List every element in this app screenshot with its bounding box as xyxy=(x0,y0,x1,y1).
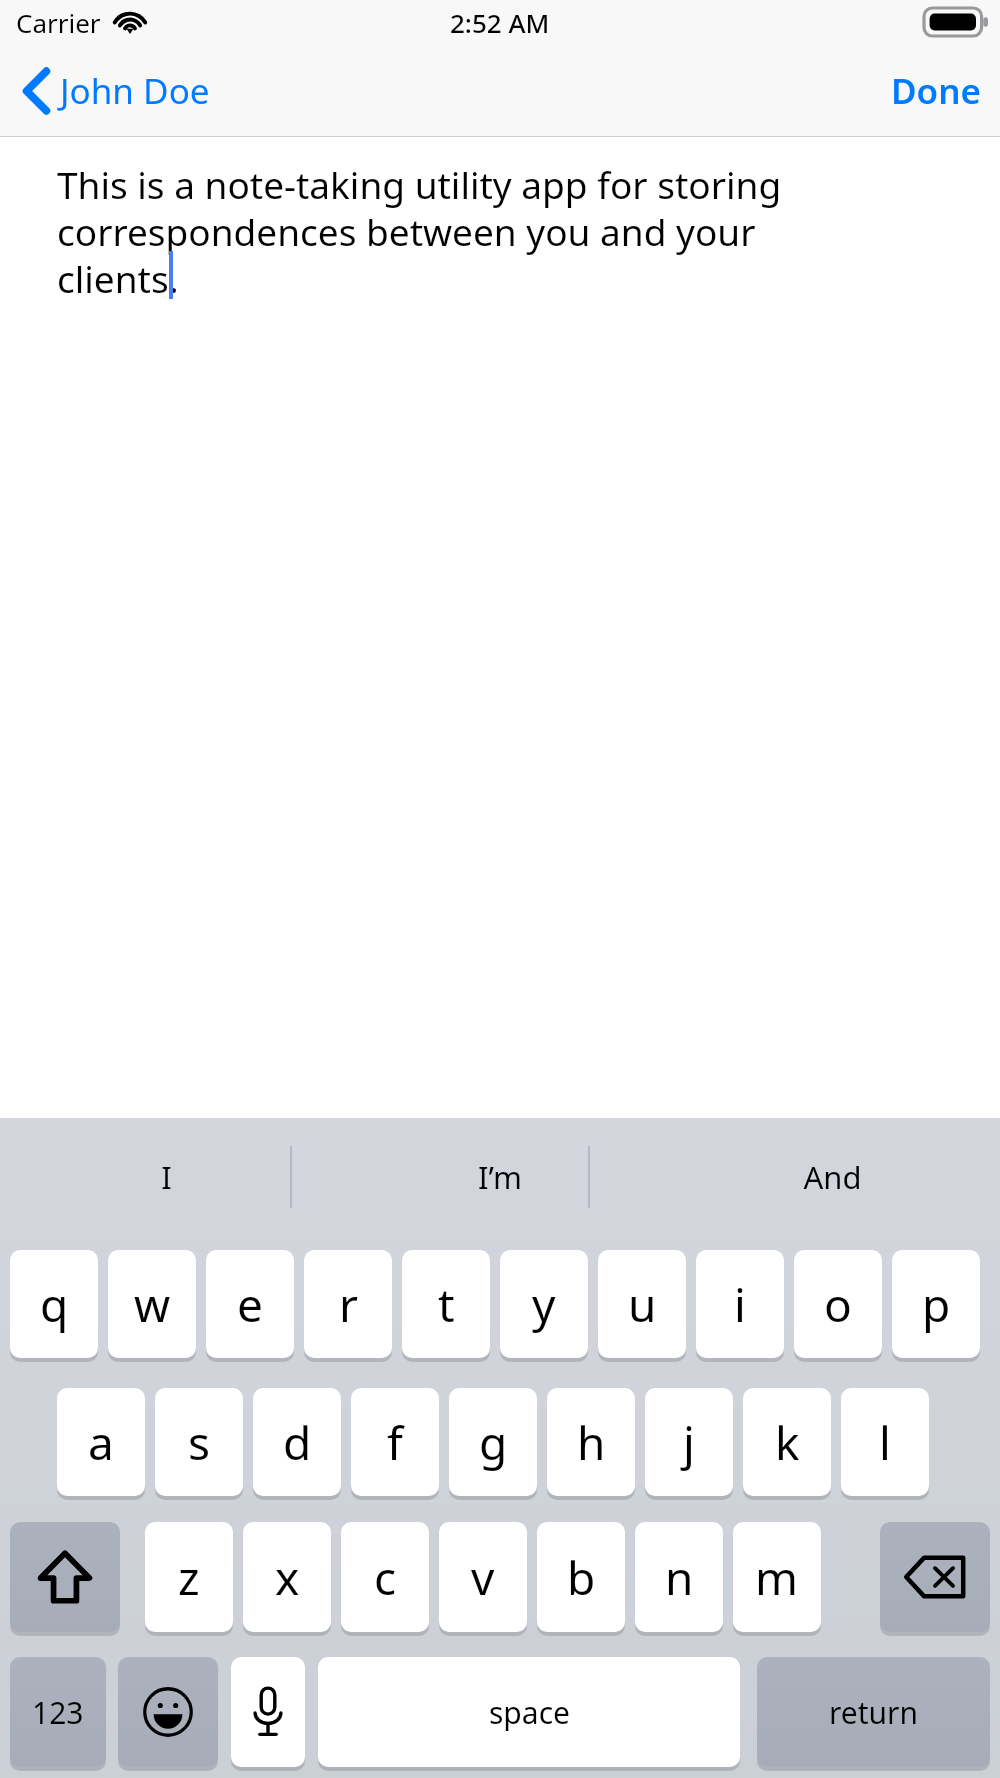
staticText: y xyxy=(532,1273,556,1336)
staticText: x xyxy=(275,1546,300,1609)
staticText: And xyxy=(803,1156,862,1198)
staticText: g xyxy=(479,1411,508,1474)
staticText: d xyxy=(283,1411,312,1474)
staticText: John Doe xyxy=(60,67,210,115)
staticText: a xyxy=(88,1411,114,1474)
staticText: e xyxy=(237,1273,263,1336)
staticText: s xyxy=(188,1411,211,1474)
staticText: l xyxy=(879,1411,891,1474)
button[interactable]: j xyxy=(645,1388,733,1496)
button[interactable]: y xyxy=(500,1250,588,1358)
button[interactable]: v xyxy=(439,1522,527,1632)
button[interactable]: a xyxy=(57,1388,145,1496)
staticText: space xyxy=(489,1692,570,1733)
button[interactable]: g xyxy=(449,1388,537,1496)
staticText: Done xyxy=(891,67,982,115)
staticText: 123 xyxy=(32,1692,84,1733)
staticText: return xyxy=(829,1692,919,1733)
other: Battery full xyxy=(924,8,988,36)
button[interactable]: k xyxy=(743,1388,831,1496)
button[interactable]: e xyxy=(206,1250,294,1358)
button[interactable]: d xyxy=(253,1388,341,1496)
button[interactable]: c xyxy=(341,1522,429,1632)
button[interactable]: x xyxy=(243,1522,331,1632)
button[interactable]: n xyxy=(635,1522,723,1632)
staticText: 2:52 AM xyxy=(450,5,550,40)
button[interactable]: return xyxy=(757,1657,990,1767)
staticText: k xyxy=(775,1411,800,1474)
button[interactable]: I xyxy=(0,1118,333,1236)
button[interactable]: I’m xyxy=(333,1118,666,1236)
button[interactable]: Dictation xyxy=(231,1657,305,1767)
staticText: v xyxy=(471,1546,495,1609)
button[interactable]: This is a note-taking utility app for st… xyxy=(0,137,1000,1137)
button[interactable]: m xyxy=(733,1522,821,1632)
button[interactable]: Backspace xyxy=(880,1522,990,1632)
staticText: p xyxy=(922,1273,951,1336)
staticText: n xyxy=(665,1546,694,1609)
button[interactable]: r xyxy=(304,1250,392,1358)
button[interactable]: o xyxy=(794,1250,882,1358)
staticText: q xyxy=(40,1273,69,1336)
staticText: Carrier xyxy=(16,5,101,40)
staticText: t xyxy=(438,1273,455,1336)
button[interactable]: s xyxy=(155,1388,243,1496)
staticText: r xyxy=(339,1273,358,1336)
staticText: This is a note-taking utility app for st… xyxy=(57,159,850,304)
staticText: I xyxy=(161,1156,172,1198)
staticText: c xyxy=(374,1546,397,1609)
staticText: h xyxy=(577,1411,606,1474)
button[interactable]: f xyxy=(351,1388,439,1496)
button[interactable]: Shift xyxy=(10,1522,120,1632)
button[interactable]: h xyxy=(547,1388,635,1496)
staticText: f xyxy=(387,1411,403,1474)
button[interactable]: p xyxy=(892,1250,980,1358)
staticText: m xyxy=(755,1546,799,1609)
staticText: b xyxy=(567,1546,596,1609)
button[interactable]: Done xyxy=(873,57,1000,125)
button[interactable]: q xyxy=(10,1250,98,1358)
button[interactable]: space xyxy=(318,1657,740,1767)
button[interactable]: l xyxy=(841,1388,929,1496)
staticText: u xyxy=(628,1273,657,1336)
staticText: o xyxy=(824,1273,852,1336)
button[interactable]: t xyxy=(402,1250,490,1358)
button[interactable]: b xyxy=(537,1522,625,1632)
staticText: w xyxy=(134,1273,171,1336)
button[interactable]: z xyxy=(145,1522,233,1632)
button[interactable]: And xyxy=(666,1118,999,1236)
button[interactable]: u xyxy=(598,1250,686,1358)
other: Wi-Fi signal xyxy=(113,10,147,36)
button[interactable]: Numbers xyxy=(10,1657,106,1767)
button[interactable]: Emoji xyxy=(118,1657,218,1767)
staticText: z xyxy=(178,1546,200,1609)
button[interactable]: John Doe xyxy=(0,59,226,123)
button[interactable]: w xyxy=(108,1250,196,1358)
staticText: I’m xyxy=(478,1156,522,1198)
button[interactable]: i xyxy=(696,1250,784,1358)
staticText: i xyxy=(734,1273,746,1336)
staticText: j xyxy=(683,1411,695,1474)
